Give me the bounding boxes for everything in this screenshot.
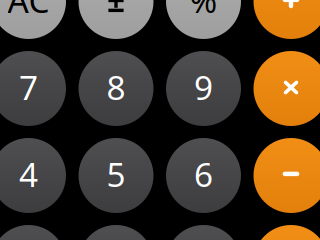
button[interactable]: 1 bbox=[0, 225, 66, 240]
button[interactable]: Multiply bbox=[253, 51, 320, 126]
staticText: 9 bbox=[194, 65, 213, 109]
staticText: 7 bbox=[19, 65, 38, 109]
button[interactable]: Subtract bbox=[253, 138, 320, 213]
button[interactable]: Add bbox=[253, 225, 320, 240]
button[interactable]: % bbox=[166, 0, 241, 39]
button[interactable]: AC bbox=[0, 0, 66, 39]
staticText: 4 bbox=[19, 152, 38, 196]
staticText: 6 bbox=[194, 152, 213, 196]
button[interactable]: Add bbox=[253, 0, 320, 39]
button[interactable]: 8 bbox=[78, 51, 153, 126]
button[interactable]: 2 bbox=[78, 225, 153, 240]
button[interactable]: 6 bbox=[166, 138, 241, 213]
staticText: 8 bbox=[106, 65, 125, 109]
button[interactable]: 3 bbox=[166, 225, 241, 240]
button[interactable]: 7 bbox=[0, 51, 66, 126]
staticText: AC bbox=[7, 0, 49, 22]
button[interactable]: Plus minus bbox=[78, 0, 153, 39]
button[interactable]: 9 bbox=[166, 51, 241, 126]
button[interactable]: 4 bbox=[0, 138, 66, 213]
staticText: % bbox=[189, 0, 217, 22]
staticText: 5 bbox=[106, 152, 125, 196]
button[interactable]: 5 bbox=[78, 138, 153, 213]
